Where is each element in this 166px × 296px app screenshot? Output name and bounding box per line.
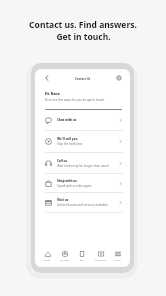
button[interactable]: My AT&T	[59, 250, 70, 263]
button[interactable]: Bill	[78, 250, 86, 263]
staticText: More	[115, 259, 121, 262]
staticText: We'll call you	[57, 137, 78, 141]
staticText: Visit us	[57, 198, 69, 202]
staticText: Here are the ways for you to get in touc…	[45, 98, 106, 102]
staticText: Wait times may be longer than usual	[57, 164, 109, 168]
staticText: Shop with us	[57, 179, 77, 183]
staticText: Limited hours and services available	[57, 203, 108, 207]
staticText: Call us	[57, 159, 68, 163]
button[interactable]: Visit us	[45, 193, 123, 212]
staticText: Home	[44, 259, 51, 262]
staticText: Speak with a sales agent	[57, 184, 92, 188]
button[interactable]: More	[114, 250, 122, 263]
staticText: Shop & Up	[95, 259, 106, 262]
staticText: Contact Us	[75, 77, 91, 81]
staticText: Contact us. Find answers.	[29, 19, 137, 31]
button[interactable]: Shop & Up	[94, 250, 107, 263]
staticText: My AT&T	[60, 259, 69, 262]
button[interactable]: Home	[43, 250, 52, 263]
button[interactable]: Call us	[45, 153, 123, 173]
button[interactable]: Chat with us	[45, 110, 123, 130]
staticText: Hi, Rene	[45, 91, 60, 96]
staticText: Chat with us	[57, 118, 77, 122]
button[interactable]: Settings	[114, 73, 124, 83]
staticText: Get in touch.	[56, 31, 111, 43]
button[interactable]: Shop with us	[45, 174, 123, 192]
staticText: Skip the hold time	[57, 142, 83, 146]
button[interactable]: We'll call you	[45, 131, 123, 152]
button[interactable]: Back	[42, 73, 52, 83]
staticText: Bill	[80, 259, 84, 262]
